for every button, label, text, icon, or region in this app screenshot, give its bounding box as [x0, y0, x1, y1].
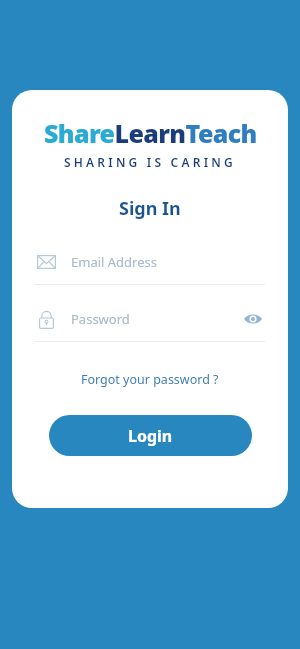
- staticText: Email Address: [71, 253, 157, 271]
- staticText: Password: [71, 310, 130, 328]
- staticText: Login: [128, 425, 173, 447]
- button[interactable]: Password: [35, 304, 265, 342]
- staticText: Forgot your password ?: [81, 371, 219, 388]
- button[interactable]: Email Address: [35, 247, 265, 285]
- button[interactable]: Forgot your password ?: [75, 367, 225, 392]
- staticText: ShareLearnTeach: [44, 116, 257, 150]
- button[interactable]: Login: [49, 415, 252, 456]
- staticText: Sign In: [119, 196, 181, 221]
- button[interactable]: Show password: [241, 307, 265, 331]
- staticText: SHARING IS CARING: [64, 154, 236, 170]
